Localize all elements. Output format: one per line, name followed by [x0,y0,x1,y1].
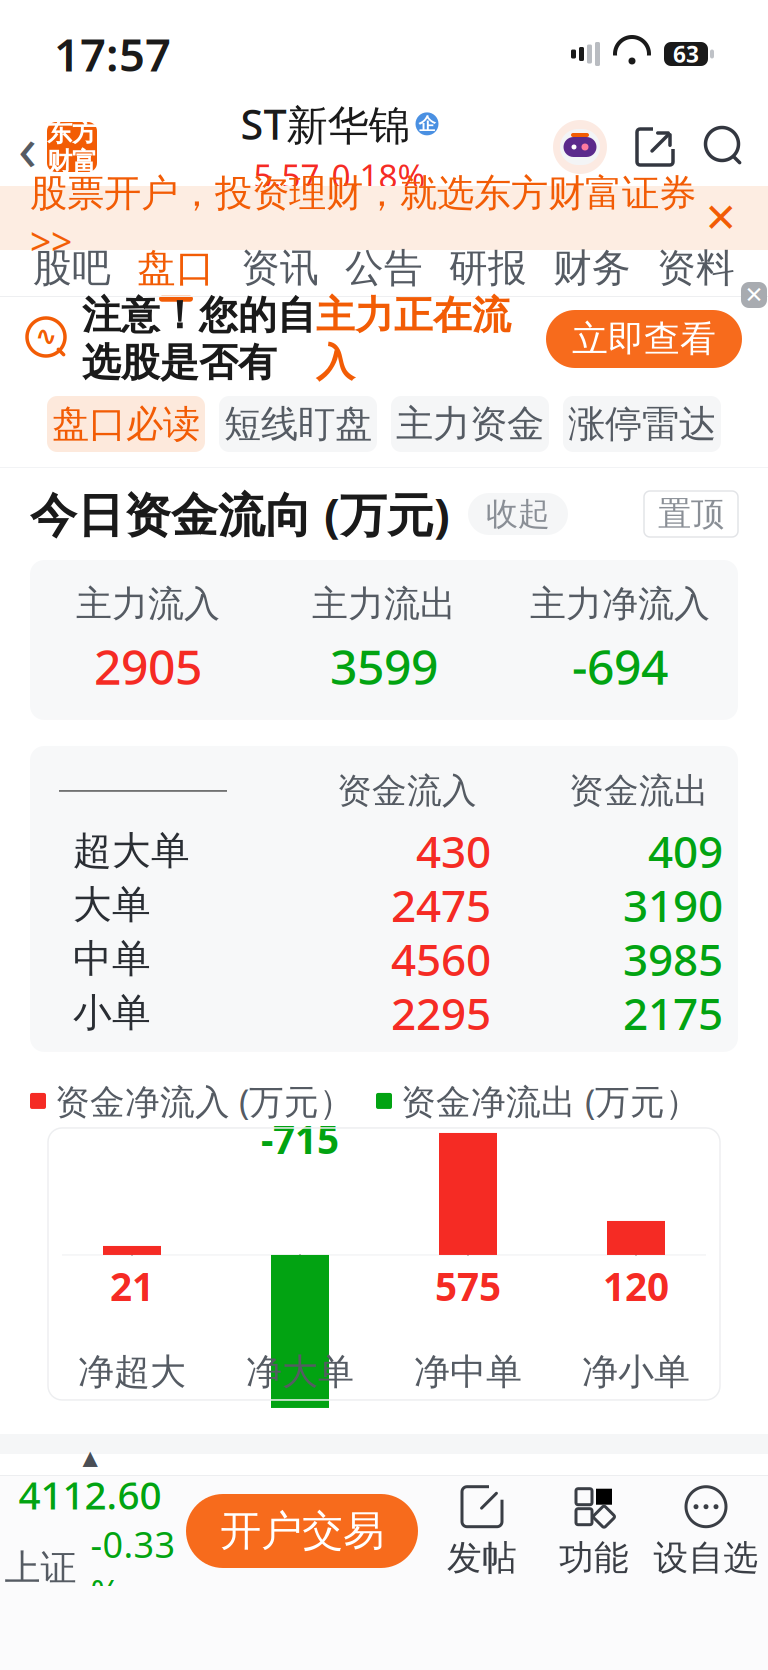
staticText: 短线盯盘 [224,401,372,447]
staticText: 2905 [94,634,202,698]
staticText: 盘口必读 [52,401,200,447]
staticText: 120 [603,1260,669,1312]
button[interactable]: ▲ [2,1446,178,1616]
staticText: 置顶 [658,493,724,534]
staticText: 主力流出 [312,582,456,626]
staticText: 财富 [47,146,97,177]
button[interactable]: 搜索 [702,125,746,169]
staticText: 立即查看 [572,317,716,361]
staticText: 小单 [73,989,151,1037]
staticText: 企 [418,113,435,134]
button[interactable]: 涨停雷达 [563,396,721,452]
staticText: 东方 [47,117,97,148]
button[interactable]: 主力资金 [391,396,549,452]
staticText: ST新华锦 [240,96,409,151]
button[interactable]: 功能 [538,1481,650,1581]
staticText: 净超大 [78,1350,186,1394]
button[interactable]: 短线盯盘 [219,396,377,452]
button[interactable]: AI 助手 [552,119,608,175]
staticText: ✕ [704,195,738,241]
button[interactable]: 分享 [634,126,676,168]
staticText: 主力净流入 [530,582,710,626]
staticText: 净中单 [414,1350,522,1394]
button[interactable]: 股吧 [20,250,124,296]
button[interactable]: 盘口必读 [47,396,205,452]
button[interactable]: 盘口 [124,250,228,296]
staticText: 21 [110,1260,154,1312]
staticText: 3599 [330,634,438,698]
button[interactable]: 返回 [0,100,97,194]
staticText: ‹ [18,106,37,188]
staticText: 0.18% [331,153,425,198]
staticText: 409 [648,822,723,880]
button[interactable]: 资料 [644,250,748,296]
staticText: 63 [673,39,699,69]
staticText: 资料 [657,244,735,292]
button[interactable]: 设自选 [650,1481,762,1581]
staticText: -715 [261,1113,339,1165]
staticText: 股票开户，投资理财，就选东方财富证券>> [30,170,696,266]
staticText: 净大单 [246,1350,354,1394]
staticText: 净小单 [582,1350,690,1394]
staticText: 大单 [73,881,151,929]
button[interactable]: 关闭广告 [739,280,768,310]
staticText: 公告 [345,244,423,292]
staticText: 开户交易 [220,1506,384,1556]
staticText: 575 [435,1260,501,1312]
staticText: 2175 [623,984,723,1042]
staticText: 3985 [623,930,723,988]
staticText: 5.57 [253,153,319,198]
button[interactable]: 财务 [540,250,644,296]
staticText: 收起 [486,494,550,534]
button[interactable]: 立即查看 [546,310,742,368]
button[interactable]: 开户交易 [186,1494,418,1568]
staticText: -0.33% [90,1520,175,1616]
staticText: -694 [572,634,668,698]
staticText: 资讯 [241,244,319,292]
staticText: 财务 [553,244,631,292]
button[interactable]: 研报 [436,250,540,296]
staticText: 资金流入 [337,770,477,812]
staticText: 资金净流入 (万元） [55,1078,354,1124]
button[interactable]: 发帖 [426,1481,538,1581]
staticText: 上证 [4,1546,76,1590]
staticText: 股吧 [33,244,111,292]
staticText: 涨停雷达 [568,401,716,447]
staticText: 2295 [391,984,491,1042]
button[interactable]: 置顶 [644,491,738,537]
staticText: 中单 [73,935,151,983]
staticText: 4560 [391,930,491,988]
staticText: 430 [416,822,491,880]
staticText: ▲ [82,1446,97,1469]
staticText: 研报 [449,244,527,292]
staticText: 17:57 [54,24,171,84]
staticText: ∿ [35,321,57,351]
staticText: 资金流出 [569,770,709,812]
staticText: 资金净流出 (万元） [401,1078,700,1124]
staticText: 今日资金流向 (万元) [30,483,450,545]
staticText: 超大单 [73,827,190,875]
staticText: 功能 [559,1537,629,1579]
staticText: 设自选 [653,1537,758,1579]
staticText: ✕ [744,282,763,308]
button[interactable]: 收起 [468,493,568,535]
staticText: 注意！您的自选股是否有 [82,291,316,386]
button[interactable]: 股票开户，投资理财，就选东方财富证券>> [0,186,768,250]
staticText: 2475 [391,876,491,934]
staticText: 主力正在流入 [316,291,511,386]
staticText: 主力资金 [396,401,544,447]
staticText: 主力流入 [76,582,220,626]
staticText: 发帖 [447,1537,517,1579]
staticText: 盘口 [137,244,215,292]
button[interactable]: 公告 [332,250,436,296]
staticText: 3190 [623,876,723,934]
button[interactable]: 资讯 [228,250,332,296]
staticText: 4112.60 [18,1469,161,1520]
